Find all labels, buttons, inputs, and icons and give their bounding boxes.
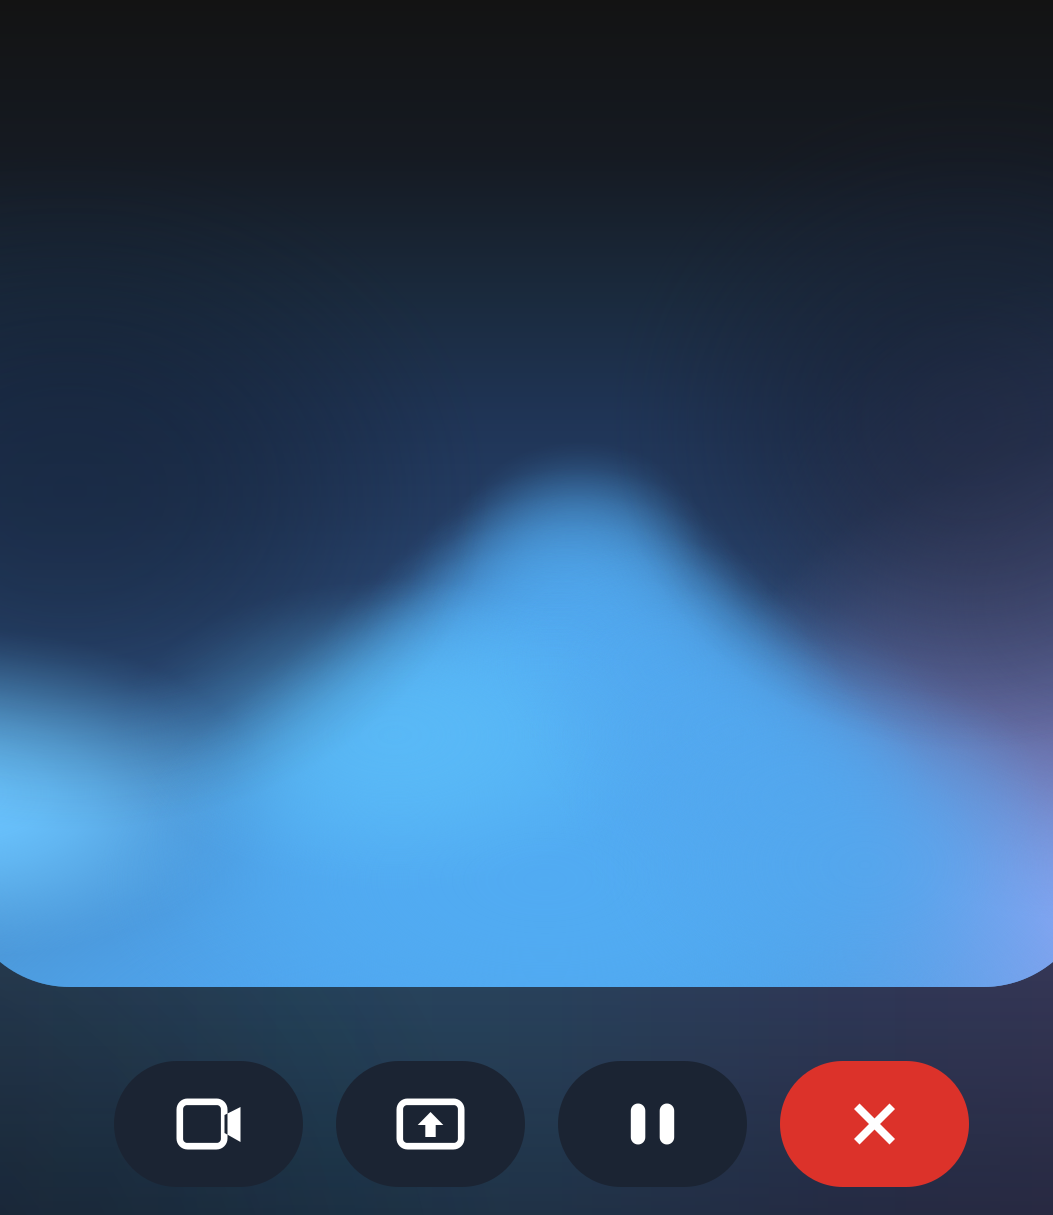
- button[interactable]: Camera: [114, 1061, 303, 1187]
- button[interactable]: End Call: [780, 1061, 969, 1187]
- button[interactable]: Share Screen: [336, 1061, 525, 1187]
- button[interactable]: Pause: [558, 1061, 747, 1187]
